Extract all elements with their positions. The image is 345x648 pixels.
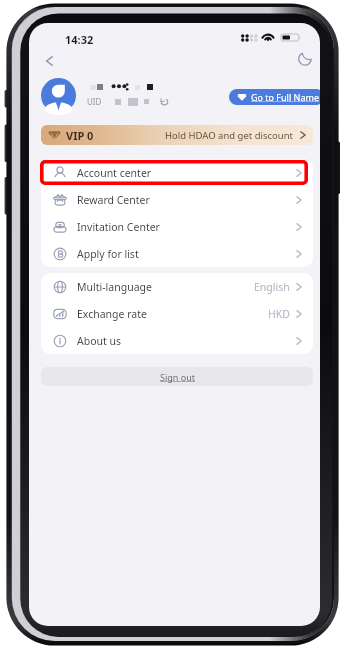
staticText: HKD (268, 307, 290, 321)
button[interactable]: Apply for list (41, 240, 313, 267)
staticText: Multi-language (77, 280, 152, 294)
staticText: UID (87, 96, 102, 107)
button[interactable]: Account center (41, 159, 313, 186)
staticText: Invitation Center (77, 220, 160, 234)
staticText: Account center (77, 166, 152, 180)
staticText: Hold HDAO and get discount (165, 129, 294, 142)
button[interactable]: Go to Full Name (229, 89, 320, 105)
button[interactable]: VIP 0 (41, 125, 313, 145)
button[interactable]: Dark mode (291, 45, 319, 73)
staticText: Apply for list (77, 247, 139, 261)
staticText: VIP 0 (66, 128, 94, 143)
staticText: 14:32 (65, 32, 94, 47)
button[interactable]: Invitation Center (41, 213, 313, 240)
button[interactable]: Multi-language (41, 273, 313, 300)
staticText: Sign out (160, 371, 195, 383)
button[interactable]: About us (41, 327, 313, 354)
staticText: English (254, 280, 290, 294)
button[interactable]: Back (35, 47, 63, 75)
button[interactable]: Sign out (41, 367, 313, 386)
staticText: Reward Center (77, 193, 150, 207)
staticText: Exchange rate (77, 307, 147, 321)
staticText: About us (77, 334, 122, 348)
button[interactable]: Exchange rate (41, 300, 313, 327)
button[interactable]: Reward Center (41, 186, 313, 213)
staticText: Go to Full Name (251, 91, 319, 103)
